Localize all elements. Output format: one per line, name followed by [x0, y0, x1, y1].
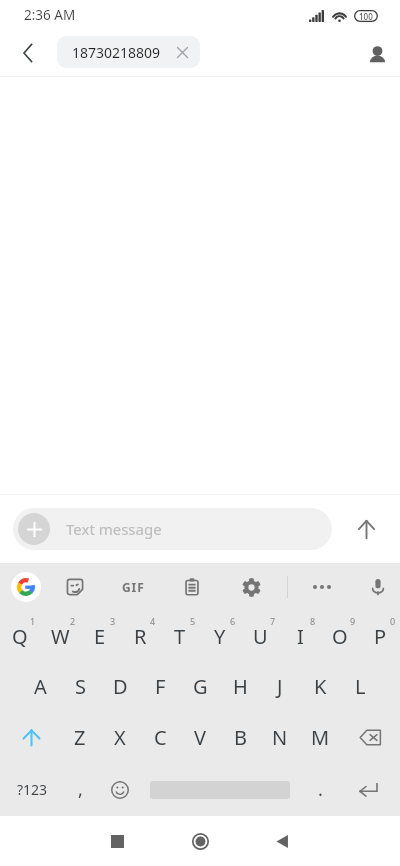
staticText: Text message: [66, 519, 162, 539]
button[interactable]: R: [120, 611, 160, 661]
staticText: H: [233, 673, 248, 700]
staticText: 1: [30, 615, 36, 627]
button[interactable]: M: [300, 711, 340, 763]
staticText: I: [297, 623, 304, 650]
button[interactable]: More options: [300, 565, 344, 609]
staticText: K: [314, 673, 327, 700]
staticText: 18730218809: [72, 43, 161, 62]
staticText: 9: [350, 615, 356, 627]
button[interactable]: V: [180, 711, 220, 763]
button[interactable]: Home: [175, 816, 225, 866]
button[interactable]: K: [300, 661, 340, 711]
button[interactable]: U: [240, 611, 280, 661]
button[interactable]: A: [20, 661, 60, 711]
staticText: ?123: [17, 780, 48, 799]
button[interactable]: C: [140, 711, 180, 763]
button[interactable]: Back: [257, 816, 307, 866]
button[interactable]: E: [80, 611, 120, 661]
staticText: C: [154, 724, 167, 751]
staticText: T: [174, 623, 186, 650]
button[interactable]: ,: [64, 763, 96, 816]
staticText: P: [374, 623, 387, 650]
staticText: L: [355, 673, 366, 700]
button[interactable]: P: [360, 611, 400, 661]
staticText: J: [277, 673, 283, 700]
button[interactable]: Emoji: [98, 763, 142, 816]
button[interactable]: Z: [60, 711, 100, 763]
button[interactable]: Google: [4, 565, 48, 609]
button[interactable]: G: [180, 661, 220, 711]
staticText: R: [134, 623, 147, 650]
staticText: 5: [190, 615, 196, 627]
staticText: B: [234, 724, 247, 751]
staticText: ,: [78, 777, 83, 802]
staticText: .: [318, 777, 323, 802]
button[interactable]: Clipboard: [170, 565, 214, 609]
button[interactable]: Backspace: [340, 711, 400, 763]
button[interactable]: F: [140, 661, 180, 711]
staticText: Z: [74, 724, 86, 751]
staticText: E: [94, 623, 106, 650]
button[interactable]: W: [40, 611, 80, 661]
button[interactable]: Contact details: [360, 37, 394, 71]
button[interactable]: 18730218809: [57, 36, 200, 68]
button[interactable]: ?123: [0, 763, 64, 816]
button[interactable]: Recents: [92, 816, 142, 866]
staticText: A: [34, 673, 47, 700]
button[interactable]: Y: [200, 611, 240, 661]
staticText: 3: [110, 615, 116, 627]
button[interactable]: Space: [144, 763, 296, 816]
button[interactable]: GIF: [111, 565, 155, 609]
button[interactable]: I: [280, 611, 320, 661]
button[interactable]: T: [160, 611, 200, 661]
button[interactable]: Settings: [229, 565, 273, 609]
button[interactable]: J: [260, 661, 300, 711]
staticText: O: [332, 623, 348, 650]
button[interactable]: .: [298, 763, 342, 816]
staticText: 0: [390, 615, 396, 627]
staticText: D: [113, 673, 128, 700]
staticText: N: [272, 724, 288, 751]
staticText: 8: [310, 615, 316, 627]
staticText: Q: [12, 623, 28, 650]
button[interactable]: Stickers: [53, 565, 97, 609]
button[interactable]: Voice input: [356, 565, 400, 609]
staticText: 6: [230, 615, 236, 627]
button[interactable]: Enter: [340, 763, 396, 816]
button[interactable]: H: [220, 661, 260, 711]
staticText: U: [253, 623, 268, 650]
button[interactable]: B: [220, 711, 260, 763]
button[interactable]: Text message: [13, 508, 332, 550]
button[interactable]: Q: [0, 611, 40, 661]
staticText: 7: [270, 615, 276, 627]
staticText: S: [75, 673, 86, 700]
button[interactable]: Shift: [0, 711, 60, 763]
button[interactable]: S: [60, 661, 100, 711]
staticText: V: [194, 724, 206, 751]
button[interactable]: Send: [342, 505, 390, 553]
staticText: 2:36 AM: [24, 6, 76, 24]
staticText: 4: [150, 615, 156, 627]
staticText: 2: [70, 615, 76, 627]
button[interactable]: O: [320, 611, 360, 661]
staticText: F: [155, 673, 166, 700]
button[interactable]: D: [100, 661, 140, 711]
button[interactable]: N: [260, 711, 300, 763]
staticText: M: [311, 724, 330, 751]
staticText: 100: [359, 11, 373, 22]
staticText: G: [193, 673, 208, 700]
staticText: GIF: [122, 579, 145, 595]
staticText: X: [114, 724, 126, 751]
button[interactable]: X: [100, 711, 140, 763]
button[interactable]: L: [340, 661, 380, 711]
button[interactable]: Back: [12, 37, 46, 71]
staticText: Y: [214, 623, 226, 650]
staticText: W: [51, 623, 70, 650]
